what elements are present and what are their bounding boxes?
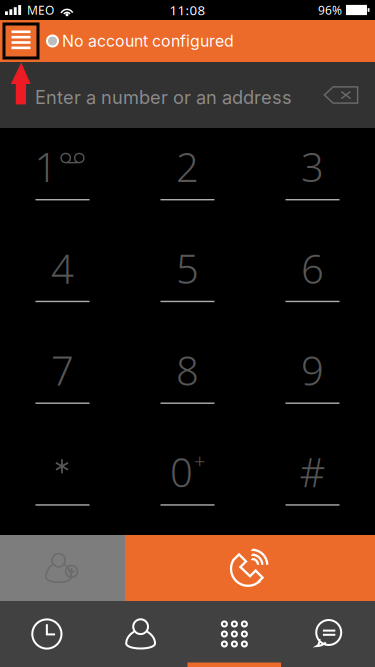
button[interactable]: Menu bbox=[4, 24, 38, 58]
staticText: 8 bbox=[176, 343, 199, 397]
button[interactable]: Chat bbox=[281, 601, 375, 667]
staticText: 2 bbox=[176, 140, 199, 193]
staticText: 0 bbox=[170, 445, 193, 498]
button[interactable]: 9 bbox=[250, 331, 375, 433]
button[interactable]: Call bbox=[125, 535, 375, 601]
staticText: # bbox=[299, 445, 325, 498]
button[interactable]: 6 bbox=[250, 230, 375, 332]
button[interactable]: pound bbox=[250, 433, 375, 535]
staticText: + bbox=[194, 447, 205, 474]
button[interactable]: 8 bbox=[125, 331, 250, 433]
button[interactable]: star bbox=[0, 433, 125, 535]
button[interactable]: 5 bbox=[125, 230, 250, 332]
staticText: 4 bbox=[51, 242, 74, 295]
staticText: 96% bbox=[318, 2, 342, 18]
button[interactable]: History bbox=[0, 601, 94, 667]
button[interactable]: 0 plus bbox=[125, 433, 250, 535]
button[interactable]: Dialer bbox=[187, 601, 281, 667]
staticText: 9 bbox=[301, 343, 324, 397]
staticText: 11:08 bbox=[169, 1, 205, 19]
staticText: 1 bbox=[34, 140, 57, 193]
staticText: No account configured bbox=[62, 31, 234, 51]
button[interactable]: 4 bbox=[0, 230, 125, 332]
staticText: Enter a number or an address bbox=[35, 86, 292, 108]
button[interactable]: 1 voicemail bbox=[0, 128, 125, 230]
button[interactable]: Contacts bbox=[94, 601, 188, 667]
staticText: MEO bbox=[27, 2, 54, 18]
button[interactable]: 2 bbox=[125, 128, 250, 230]
button[interactable]: 3 bbox=[250, 128, 375, 230]
staticText: 3 bbox=[301, 140, 324, 193]
staticText: 6 bbox=[301, 242, 324, 295]
button[interactable]: 7 bbox=[0, 331, 125, 433]
button[interactable]: Delete bbox=[313, 72, 369, 118]
staticText: 7 bbox=[51, 343, 74, 397]
staticText: 5 bbox=[176, 242, 199, 295]
